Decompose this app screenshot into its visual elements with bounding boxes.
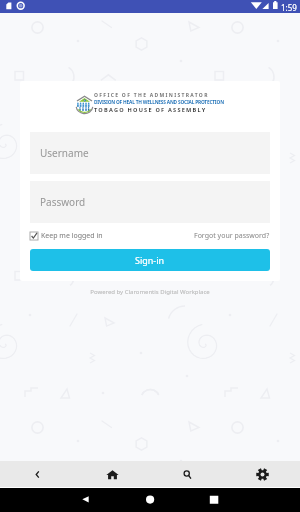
staticText: OFFICE OF THE ADMINISTRATOR <box>94 92 209 99</box>
button[interactable]: Forgot your password? <box>194 231 270 241</box>
button[interactable]: Home <box>75 461 150 487</box>
staticText: Password <box>40 195 86 209</box>
button[interactable]: Password <box>30 181 270 223</box>
button[interactable]: Home <box>139 488 162 512</box>
staticText: 1:59 <box>281 2 297 13</box>
button[interactable]: Keep me logged in <box>30 231 103 241</box>
button[interactable]: Sign-in <box>30 249 270 271</box>
staticText: Username <box>40 146 89 160</box>
button[interactable]: Username <box>30 132 270 174</box>
button[interactable]: Search <box>150 461 225 487</box>
staticText: TOBAGO HOUSE OF ASSEMBLY <box>94 106 207 114</box>
button[interactable]: Recents <box>203 488 226 512</box>
staticText: DIVISION OF HEAL TH WELLNESS AND SOCIAL … <box>94 99 224 106</box>
button[interactable]: Settings <box>225 461 300 487</box>
button[interactable]: Back <box>74 488 97 512</box>
staticText: Sign-in <box>135 254 165 266</box>
staticText: Keep me logged in <box>41 231 103 241</box>
button[interactable]: Back <box>0 461 75 487</box>
staticText: Powered by Claromentis Digital Workplace <box>0 288 300 296</box>
